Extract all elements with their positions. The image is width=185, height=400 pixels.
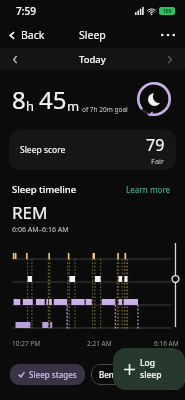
staticText: 6:06 AM–6:16 AM [12, 225, 69, 235]
staticText: REM [12, 201, 48, 224]
staticText: of 7h 20m goal [82, 105, 128, 114]
staticText: Learn more [126, 184, 171, 195]
staticText: 7:59 [16, 4, 36, 18]
staticText: Fair [151, 156, 165, 166]
staticText: Sleep score [20, 144, 66, 156]
button[interactable]: Benchmarks [91, 364, 155, 385]
button[interactable]: Next day [154, 51, 185, 68]
staticText: Benchmarks [99, 369, 147, 380]
staticText: 6:16 AM [154, 339, 179, 348]
button[interactable]: Sleep score [9, 130, 176, 170]
staticText: 100 [163, 8, 172, 15]
button[interactable]: More options [151, 27, 185, 43]
staticText: 2:21 AM [87, 339, 112, 348]
button[interactable]: Back [0, 24, 51, 46]
button[interactable]: Sleep stages [10, 364, 85, 385]
staticText: Sleep timeline [12, 183, 124, 196]
staticText: Today [79, 53, 106, 66]
button[interactable]: Log sleep [113, 348, 185, 390]
staticText: 8 [12, 83, 26, 116]
staticText: h [26, 97, 35, 115]
button[interactable]: Previous day [0, 51, 31, 68]
button[interactable]: Aw [161, 358, 185, 390]
staticText: m [67, 97, 80, 115]
button[interactable]: Learn more [124, 182, 173, 197]
staticText: 79 [146, 134, 165, 156]
staticText: Log sleep [140, 357, 174, 381]
staticText: Sleep [79, 28, 106, 42]
staticText: 10:27 PM [12, 339, 41, 348]
staticText: Back [21, 28, 45, 42]
staticText: 45 [39, 83, 67, 116]
staticText: Sleep stages [29, 369, 77, 380]
